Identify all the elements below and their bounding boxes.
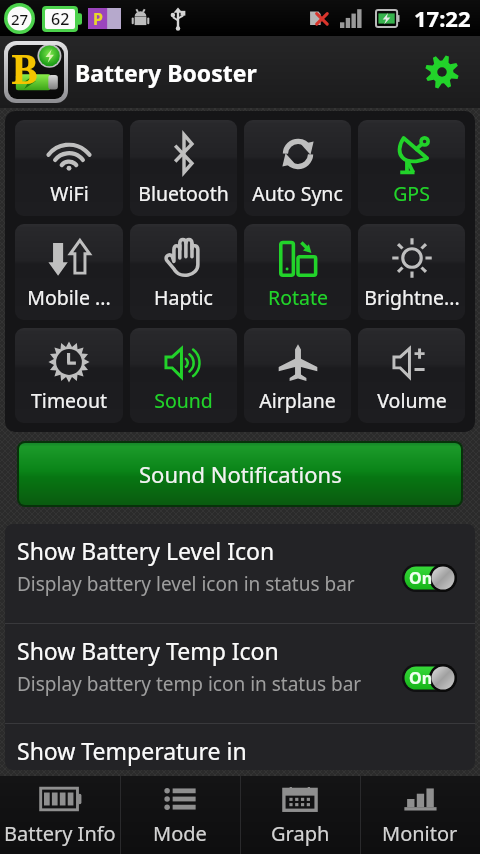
staticText: Brightne...: [364, 284, 460, 311]
staticText: Graph: [271, 820, 330, 847]
button[interactable]: Airplane: [244, 328, 351, 423]
staticText: 17:22: [414, 3, 471, 33]
button[interactable]: Sound Notifications: [19, 443, 461, 505]
button[interactable]: WiFi: [15, 120, 123, 216]
button[interactable]: Battery Info: [0, 776, 120, 854]
button[interactable]: Volume: [358, 328, 465, 423]
staticText: Auto Sync: [252, 180, 343, 207]
staticText: Sound: [154, 387, 213, 414]
staticText: Mode: [153, 820, 207, 847]
staticText: 27: [11, 9, 29, 29]
staticText: B: [11, 45, 38, 95]
button[interactable]: GPS: [358, 120, 465, 216]
staticText: Timeout: [31, 387, 107, 414]
staticText: Bluetooth: [138, 180, 229, 207]
staticText: Monitor: [382, 820, 458, 847]
staticText: P: [93, 8, 103, 29]
button[interactable]: Mobile ...: [15, 224, 123, 320]
staticText: Show Battery Level Icon: [17, 535, 275, 566]
staticText: GPS: [393, 180, 430, 207]
button[interactable]: Show Temperature in: [5, 724, 475, 770]
button[interactable]: Rotate: [244, 224, 351, 320]
staticText: Mobile ...: [27, 284, 111, 311]
staticText: Battery Info: [4, 820, 116, 847]
staticText: 62: [51, 8, 70, 30]
button[interactable]: Graph: [240, 776, 360, 854]
button[interactable]: Show Battery Temp Icon: [5, 624, 475, 723]
button[interactable]: Brightne...: [358, 224, 465, 320]
staticText: On: [409, 567, 433, 589]
button[interactable]: Sound: [130, 328, 237, 423]
button[interactable]: Bluetooth: [130, 120, 237, 216]
button[interactable]: Monitor: [360, 776, 480, 854]
staticText: Display battery temp icon in status bar: [17, 671, 362, 697]
staticText: Sound Notifications: [139, 459, 342, 489]
staticText: Haptic: [154, 284, 213, 311]
staticText: Rotate: [268, 284, 328, 311]
button[interactable]: Mode: [120, 776, 240, 854]
staticText: Volume: [377, 387, 447, 414]
button[interactable]: Timeout: [15, 328, 123, 423]
staticText: WiFi: [50, 180, 89, 207]
button[interactable]: Haptic: [130, 224, 237, 320]
button[interactable]: Settings: [416, 46, 468, 98]
staticText: Battery Booster: [75, 57, 257, 88]
staticText: Airplane: [259, 387, 336, 414]
staticText: Display battery level icon in status bar: [17, 571, 355, 597]
staticText: Show Battery Temp Icon: [17, 635, 279, 666]
button[interactable]: Auto Sync: [244, 120, 351, 216]
staticText: On: [409, 667, 433, 689]
staticText: Show Temperature in: [17, 735, 247, 766]
button[interactable]: Show Battery Level Icon: [5, 524, 475, 623]
